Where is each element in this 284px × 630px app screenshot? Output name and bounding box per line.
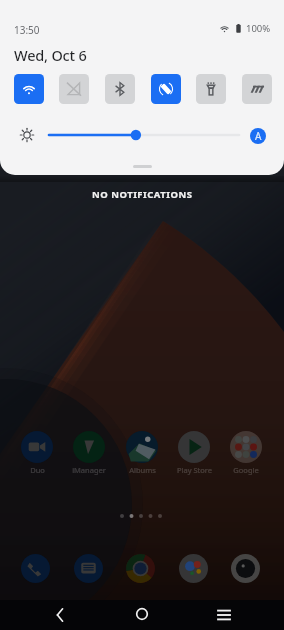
button[interactable]: Duo [13, 427, 61, 481]
button[interactable]: iManager [65, 427, 113, 481]
staticText: Play Store [177, 465, 212, 475]
staticText: Google [233, 465, 259, 475]
staticText: Albums [129, 465, 156, 475]
staticText: 13:50 [14, 23, 40, 37]
button[interactable]: Brightness [47, 127, 241, 143]
button[interactable]: Bluetooth [105, 74, 135, 104]
button[interactable]: Chrome [118, 550, 163, 587]
staticText: Duo [30, 465, 45, 475]
staticText: iManager [72, 465, 106, 475]
button[interactable]: More [242, 74, 272, 104]
staticText: Wed, Oct 6 [14, 45, 87, 65]
staticText: 100% [246, 22, 271, 35]
button[interactable]: Camera [223, 550, 268, 587]
button[interactable]: Auto brightness [250, 128, 266, 144]
button[interactable]: Albums [118, 427, 166, 481]
button[interactable]: Mobile data [59, 74, 89, 104]
button[interactable]: Auto rotate [151, 74, 181, 104]
button[interactable]: Phone [13, 550, 58, 587]
button[interactable]: Assistant [171, 550, 216, 587]
button[interactable]: Messages [66, 550, 111, 587]
button[interactable]: Brightness mode [19, 127, 35, 143]
staticText: A [255, 129, 262, 143]
button[interactable]: Recent apps [209, 600, 239, 630]
button[interactable]: Google [222, 427, 270, 481]
button[interactable]: Flashlight [196, 74, 226, 104]
staticText: NO NOTIFICATIONS [92, 188, 193, 201]
button[interactable]: Back [45, 600, 75, 630]
button[interactable]: Wi-Fi [14, 74, 44, 104]
button[interactable]: Play Store [170, 427, 218, 481]
button[interactable]: Home [127, 599, 157, 629]
